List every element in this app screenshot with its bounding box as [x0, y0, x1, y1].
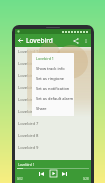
button[interactable]: Next — [61, 170, 68, 177]
button[interactable]: Back — [15, 35, 26, 46]
button[interactable]: Share — [32, 103, 74, 113]
staticText: Lovebird 1 — [18, 162, 35, 167]
staticText: Set as notification sound — [36, 86, 74, 91]
staticText: Lovebird 1 — [36, 56, 54, 61]
button[interactable]: Lovebird 2 — [15, 59, 91, 71]
button[interactable]: Share — [70, 35, 81, 46]
staticText: Lovebird 8 — [18, 133, 39, 139]
staticText: Lovebird 2 — [18, 61, 39, 67]
staticText: Show track info — [36, 66, 65, 71]
staticText: Lovebird 6 — [18, 109, 39, 115]
staticText: Lovebird 3 — [18, 73, 39, 79]
button[interactable]: Lovebird 5 — [15, 95, 91, 107]
button[interactable]: Play — [49, 169, 57, 177]
staticText: 0:02 — [17, 177, 23, 181]
button[interactable]: More options — [81, 36, 90, 45]
staticText: Lovebird — [26, 36, 53, 45]
button[interactable]: Previous — [38, 170, 45, 177]
button[interactable]: Show track info — [32, 63, 74, 73]
staticText: Lovebird 1 — [18, 49, 39, 55]
button[interactable]: Lovebird 9 — [15, 143, 91, 155]
button[interactable]: Lovebird 6 — [15, 107, 91, 119]
staticText: Lovebird 4 — [18, 85, 39, 91]
staticText: Lovebird 9 — [18, 145, 39, 151]
staticText: Share — [36, 106, 47, 111]
staticText: Lovebird 7 — [18, 121, 39, 127]
button[interactable]: Set as ringtone — [32, 73, 74, 83]
button[interactable]: Set as notification sound — [32, 83, 74, 93]
button[interactable]: Lovebird 4 — [15, 83, 91, 95]
staticText: Lovebird 5 — [18, 97, 39, 103]
button[interactable]: Lovebird 7 — [15, 119, 91, 131]
staticText: Set as default alarm sound — [36, 96, 74, 101]
button[interactable]: Lovebird 1 — [15, 47, 91, 59]
button[interactable]: Lovebird 8 — [15, 131, 91, 143]
button[interactable]: Lovebird 3 — [15, 71, 91, 83]
button[interactable]: Set as default alarm sound — [32, 93, 74, 103]
staticText: Set as ringtone — [36, 76, 65, 81]
staticText: 0:28 — [83, 177, 89, 181]
